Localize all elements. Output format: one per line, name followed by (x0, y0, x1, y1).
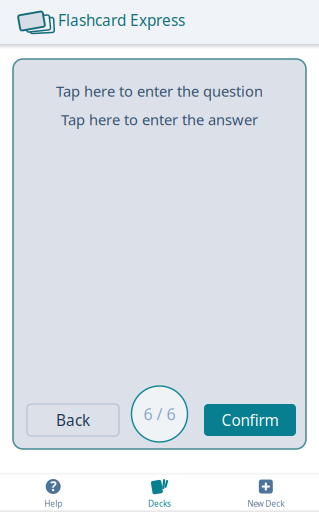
staticText: Confirm (221, 410, 278, 430)
staticText: Decks (148, 498, 171, 509)
staticText: Tap here to enter the question (56, 81, 263, 101)
staticText: Flashcard Express (58, 10, 185, 30)
button[interactable]: Back (27, 404, 119, 440)
button[interactable]: ? (0, 473, 106, 512)
button[interactable]: New Deck (213, 473, 319, 512)
button[interactable]: Decks (106, 473, 213, 512)
button[interactable]: Confirm (204, 404, 296, 440)
staticText: 6 / 6 (143, 403, 175, 425)
staticText: Tap here to enter the answer (61, 109, 258, 129)
staticText: ? (50, 477, 56, 495)
staticText: Back (56, 410, 90, 430)
staticText: New Deck (247, 498, 284, 509)
staticText: Help (44, 498, 62, 509)
